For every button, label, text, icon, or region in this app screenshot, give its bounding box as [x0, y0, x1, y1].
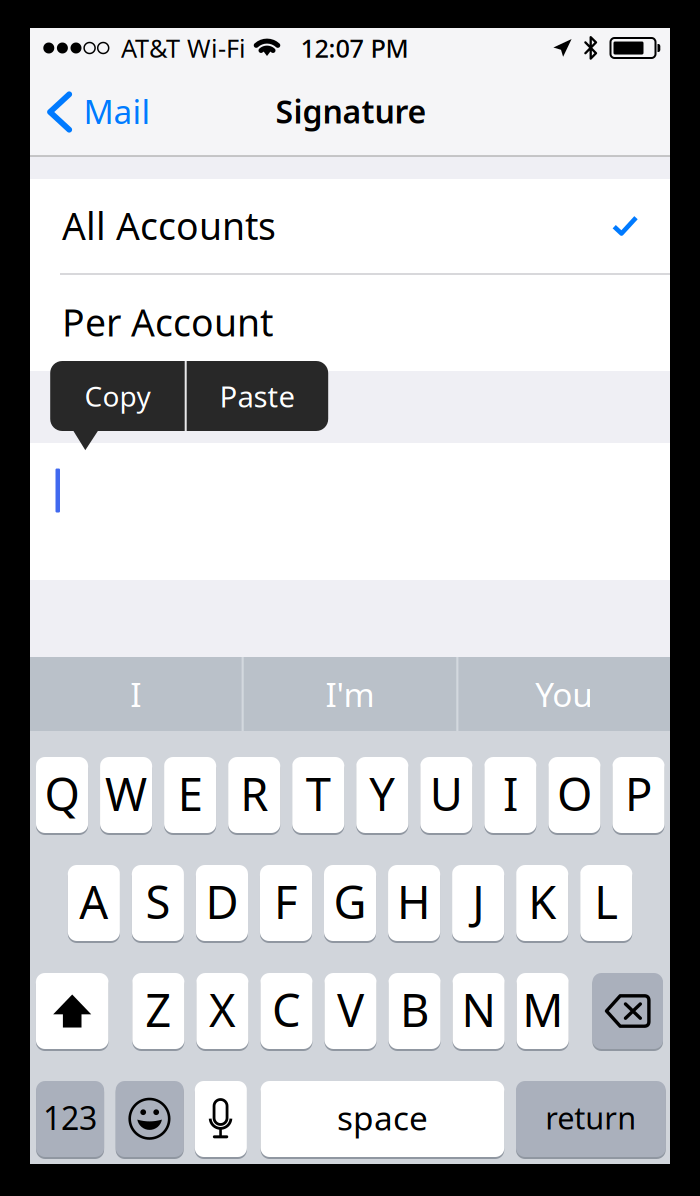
button[interactable]: N	[452, 973, 505, 1051]
staticText: Q	[44, 763, 79, 824]
button[interactable]: P	[612, 757, 664, 835]
staticText: W	[105, 763, 147, 824]
button[interactable]: Copy	[50, 361, 185, 431]
staticText: return	[545, 1097, 636, 1138]
staticText: O	[557, 763, 592, 824]
button[interactable]: Shift	[36, 973, 108, 1051]
button[interactable]: Q	[36, 757, 88, 835]
button[interactable]: R	[228, 757, 280, 835]
staticText: C	[272, 979, 301, 1040]
staticText: Z	[145, 979, 171, 1040]
staticText: T	[306, 763, 331, 824]
staticText: M	[522, 979, 563, 1040]
button[interactable]: A	[68, 865, 120, 943]
staticText: V	[337, 979, 364, 1040]
button[interactable]: Delete	[592, 973, 663, 1051]
staticText: F	[274, 871, 298, 932]
button[interactable]: You	[458, 657, 670, 731]
staticText: L	[594, 871, 618, 932]
button[interactable]: V	[324, 973, 376, 1051]
staticText: Y	[369, 763, 395, 824]
staticText: AT&T Wi-Fi	[121, 31, 246, 65]
staticText: space	[337, 1095, 428, 1140]
staticText: N	[462, 979, 496, 1040]
staticText: X	[209, 979, 236, 1040]
staticText: I'm	[325, 672, 374, 716]
staticText: R	[240, 763, 268, 824]
button[interactable]: T	[292, 757, 344, 835]
staticText: D	[205, 871, 238, 932]
button[interactable]: 123	[36, 1081, 104, 1159]
staticText: Copy	[84, 377, 150, 415]
button[interactable]: I'm	[244, 657, 456, 731]
button[interactable]: M	[517, 973, 569, 1051]
button[interactable]: G	[324, 865, 376, 943]
staticText: You	[535, 672, 593, 716]
button[interactable]: B	[388, 973, 441, 1051]
staticText: I	[130, 672, 141, 716]
staticText: Paste	[219, 376, 295, 415]
button[interactable]: I	[484, 757, 536, 835]
staticText: J	[472, 871, 484, 932]
button[interactable]: space	[261, 1081, 504, 1159]
button[interactable]: Emoji	[116, 1081, 184, 1159]
staticText: 12:07 PM	[300, 31, 408, 65]
staticText: K	[528, 871, 556, 932]
button[interactable]: J	[452, 865, 504, 943]
button[interactable]: L	[580, 865, 632, 943]
staticText: G	[334, 871, 367, 932]
button[interactable]: Mail	[30, 84, 164, 146]
staticText: A	[79, 871, 108, 932]
staticText: E	[178, 763, 203, 824]
button[interactable]: K	[516, 865, 568, 943]
button[interactable]: D	[196, 865, 248, 943]
button[interactable]: I	[30, 657, 242, 731]
staticText: Signature	[275, 90, 426, 132]
button[interactable]: Paste	[187, 361, 328, 431]
button[interactable]: H	[388, 865, 440, 943]
staticText: Per Account	[62, 297, 273, 347]
button[interactable]: return	[516, 1081, 666, 1159]
staticText: P	[625, 763, 652, 824]
staticText: H	[397, 871, 431, 932]
staticText: U	[430, 763, 463, 824]
button[interactable]: W	[100, 757, 152, 835]
staticText: S	[145, 871, 170, 932]
button[interactable]: U	[420, 757, 472, 835]
staticText: I	[503, 763, 518, 824]
staticText: 123	[43, 1096, 97, 1139]
button[interactable]: E	[164, 757, 216, 835]
button[interactable]: Z	[132, 973, 184, 1051]
button[interactable]: Dictate	[195, 1081, 247, 1159]
button[interactable]: O	[548, 757, 600, 835]
button[interactable]: Y	[356, 757, 408, 835]
staticText: Mail	[83, 89, 150, 133]
button[interactable]: F	[260, 865, 312, 943]
button[interactable]: S	[132, 865, 184, 943]
button[interactable]: X	[196, 973, 248, 1051]
staticText: All Accounts	[62, 201, 276, 250]
button[interactable]: C	[260, 973, 312, 1051]
staticText: B	[400, 979, 429, 1040]
